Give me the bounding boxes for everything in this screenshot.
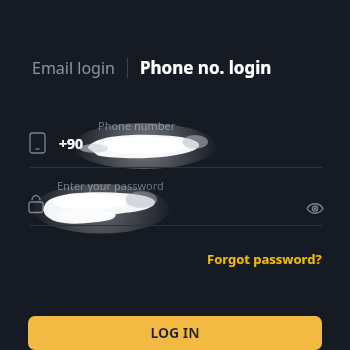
button[interactable]: Enter your password [0, 178, 350, 225]
button[interactable]: Email login [30, 53, 117, 83]
staticText: +90 [59, 134, 84, 153]
button[interactable]: Forgot password? [201, 248, 350, 270]
staticText: Enter your password [57, 178, 164, 193]
staticText: LOG IN [150, 323, 200, 342]
button[interactable]: LOG IN [28, 316, 322, 350]
button[interactable]: Show password [302, 195, 328, 221]
button[interactable]: Phone no. login [138, 52, 274, 83]
staticText: Phone number [98, 118, 176, 133]
staticText: Forgot password? [207, 250, 322, 268]
button[interactable]: Phone number [0, 115, 350, 167]
staticText: Email login [32, 57, 115, 79]
staticText: Phone no. login [140, 56, 272, 79]
